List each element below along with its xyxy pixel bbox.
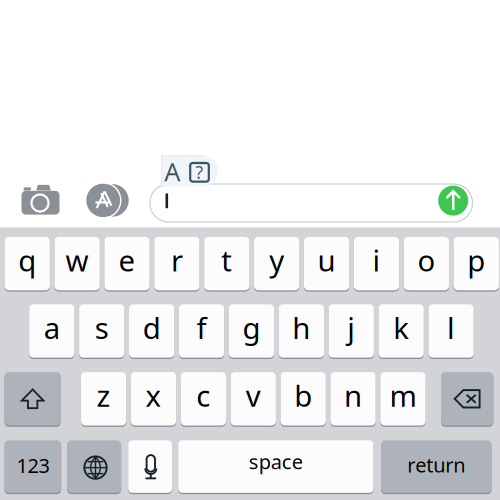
button[interactable]: h <box>279 303 324 359</box>
button[interactable]: e <box>104 236 150 292</box>
button[interactable]: space <box>178 439 373 494</box>
button[interactable]: q <box>5 236 50 292</box>
staticText: d <box>143 308 161 347</box>
staticText: b <box>294 376 312 415</box>
button[interactable]: c <box>181 371 226 427</box>
button[interactable]: s <box>79 303 124 359</box>
button[interactable]: Dictation <box>128 439 172 494</box>
staticText: c <box>196 376 210 415</box>
staticText: h <box>292 308 310 347</box>
button[interactable]: i <box>354 236 399 292</box>
button[interactable]: Delete <box>441 371 493 427</box>
button[interactable]: Shift <box>4 371 61 427</box>
button[interactable]: l <box>428 303 474 359</box>
button[interactable]: Send <box>438 186 468 216</box>
button[interactable]: b <box>280 371 326 427</box>
button[interactable]: return <box>381 439 492 494</box>
staticText: x <box>145 376 161 415</box>
button[interactable]: z <box>81 371 126 427</box>
staticText: j <box>347 308 355 347</box>
staticText: l <box>447 308 455 347</box>
button[interactable]: x <box>131 371 176 427</box>
staticText: 123 <box>16 452 49 479</box>
button[interactable]: o <box>404 236 449 292</box>
button[interactable]: r <box>154 236 199 292</box>
staticText: z <box>97 376 111 415</box>
staticText: r <box>171 241 183 280</box>
staticText: g <box>242 308 260 347</box>
staticText: o <box>417 241 435 280</box>
button[interactable]: m <box>380 371 426 427</box>
staticText: n <box>344 376 362 415</box>
button[interactable]: k <box>378 303 424 359</box>
staticText: v <box>246 376 261 415</box>
button[interactable]: j <box>329 303 374 359</box>
staticText: p <box>467 241 485 280</box>
button[interactable]: Next keyboard <box>67 439 121 494</box>
button[interactable]: a <box>29 303 74 359</box>
button[interactable]: Camera <box>20 184 60 215</box>
button[interactable]: f <box>179 303 224 359</box>
button[interactable]: p <box>454 236 499 292</box>
button[interactable]: n <box>330 371 376 427</box>
staticText: A <box>164 155 180 188</box>
button[interactable]: d <box>129 303 174 359</box>
button[interactable]: y <box>254 236 299 292</box>
staticText: u <box>318 241 336 280</box>
button[interactable]: g <box>229 303 274 359</box>
staticText: f <box>196 308 206 347</box>
staticText: t <box>221 241 232 280</box>
staticText: s <box>95 308 109 347</box>
button[interactable]: w <box>54 236 100 292</box>
staticText: k <box>393 308 409 347</box>
staticText: return <box>407 451 465 478</box>
button[interactable]: u <box>304 236 349 292</box>
staticText: q <box>18 241 36 280</box>
staticText: m <box>389 376 416 415</box>
button[interactable]: 123 <box>5 439 61 494</box>
staticText: a <box>44 308 60 347</box>
staticText: w <box>66 241 89 280</box>
staticText: ? <box>195 161 203 184</box>
staticText: e <box>118 241 135 280</box>
staticText: i <box>372 241 380 280</box>
button[interactable]: t <box>204 236 249 292</box>
staticText: space <box>249 448 303 475</box>
staticText: y <box>269 241 284 280</box>
button[interactable]: v <box>231 371 276 427</box>
button[interactable]: App Store <box>84 183 128 217</box>
